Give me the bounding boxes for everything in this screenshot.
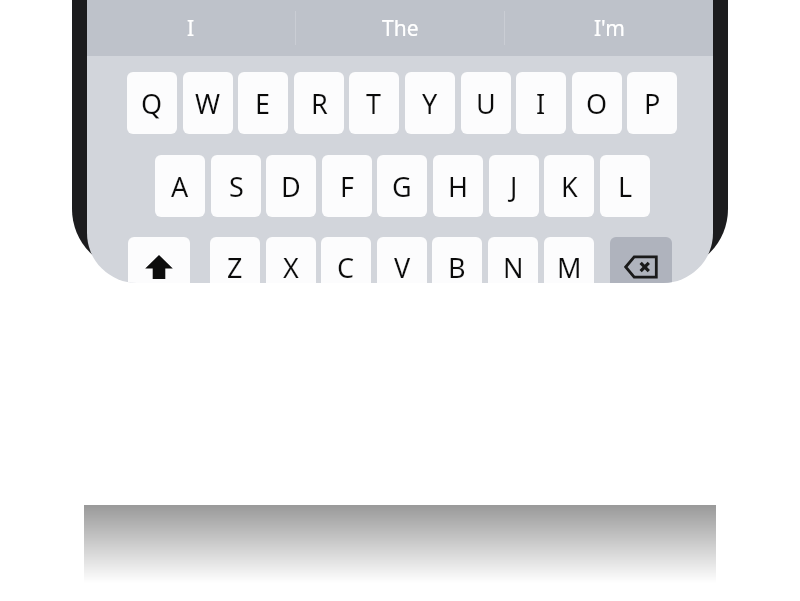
staticText: F: [340, 168, 355, 205]
staticText: P: [644, 85, 661, 122]
button[interactable]: J: [489, 155, 539, 217]
staticText: X: [283, 249, 299, 283]
staticText: H: [448, 168, 469, 205]
button[interactable]: Shift: [128, 237, 190, 283]
staticText: A: [171, 168, 189, 205]
button[interactable]: N: [488, 237, 538, 283]
staticText: I: [187, 14, 195, 43]
button[interactable]: B: [432, 237, 482, 283]
button[interactable]: U: [461, 72, 511, 134]
button[interactable]: X: [266, 237, 316, 283]
staticText: The: [382, 14, 419, 43]
staticText: Z: [227, 249, 243, 283]
staticText: Q: [141, 85, 163, 122]
button[interactable]: P: [627, 72, 677, 134]
staticText: N: [503, 249, 524, 283]
button[interactable]: W: [183, 72, 233, 134]
staticText: R: [311, 85, 328, 122]
button[interactable]: Y: [405, 72, 455, 134]
button[interactable]: G: [377, 155, 427, 217]
button[interactable]: C: [321, 237, 371, 283]
staticText: W: [195, 85, 221, 122]
staticText: E: [255, 85, 271, 122]
button[interactable]: S: [211, 155, 261, 217]
staticText: M: [557, 249, 582, 283]
staticText: L: [618, 168, 633, 205]
staticText: S: [229, 168, 244, 205]
button[interactable]: I: [516, 72, 566, 134]
button[interactable]: R: [294, 72, 344, 134]
button[interactable]: The: [296, 0, 504, 56]
button[interactable]: Q: [127, 72, 177, 134]
button[interactable]: K: [544, 155, 594, 217]
staticText: C: [337, 249, 355, 283]
staticText: V: [394, 249, 411, 283]
staticText: I'm: [594, 14, 625, 43]
button[interactable]: I: [87, 0, 295, 56]
staticText: O: [586, 85, 608, 122]
button[interactable]: F: [322, 155, 372, 217]
staticText: D: [281, 168, 301, 205]
staticText: K: [561, 168, 578, 205]
button[interactable]: H: [433, 155, 483, 217]
button[interactable]: T: [349, 72, 399, 134]
button[interactable]: Backspace: [610, 237, 672, 283]
button[interactable]: L: [600, 155, 650, 217]
button[interactable]: O: [572, 72, 622, 134]
staticText: T: [366, 85, 382, 122]
staticText: I: [536, 85, 546, 122]
button[interactable]: E: [238, 72, 288, 134]
button[interactable]: V: [377, 237, 427, 283]
button[interactable]: D: [266, 155, 316, 217]
button[interactable]: A: [155, 155, 205, 217]
button[interactable]: Z: [210, 237, 260, 283]
staticText: B: [448, 249, 466, 283]
button[interactable]: M: [544, 237, 594, 283]
staticText: Y: [422, 85, 438, 122]
staticText: U: [476, 85, 496, 122]
button[interactable]: I'm: [505, 0, 713, 56]
staticText: G: [392, 168, 412, 205]
staticText: J: [510, 168, 518, 205]
